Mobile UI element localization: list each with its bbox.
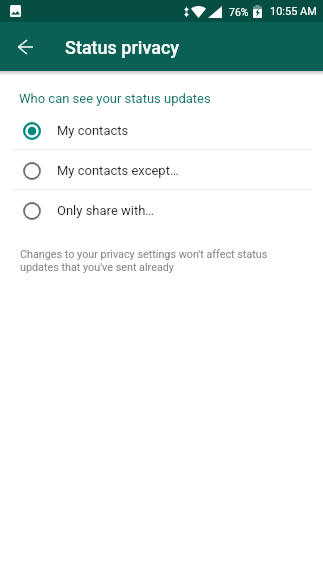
staticText: Only share with… (57, 203, 155, 218)
staticText: Who can see your status updates (19, 91, 211, 106)
button[interactable]: My contacts except… (0, 150, 323, 189)
staticText: 10:55 AM (270, 5, 317, 18)
staticText: 76% (229, 6, 249, 18)
button[interactable]: Only share with… (0, 190, 323, 229)
staticText: My contacts (57, 123, 129, 138)
staticText: Status privacy (65, 37, 180, 58)
button[interactable]: My contacts (0, 110, 323, 149)
button[interactable]: Navigate up (6, 28, 44, 66)
staticText: Changes to your privacy settings won't a… (20, 248, 278, 274)
staticText: My contacts except… (57, 163, 179, 178)
